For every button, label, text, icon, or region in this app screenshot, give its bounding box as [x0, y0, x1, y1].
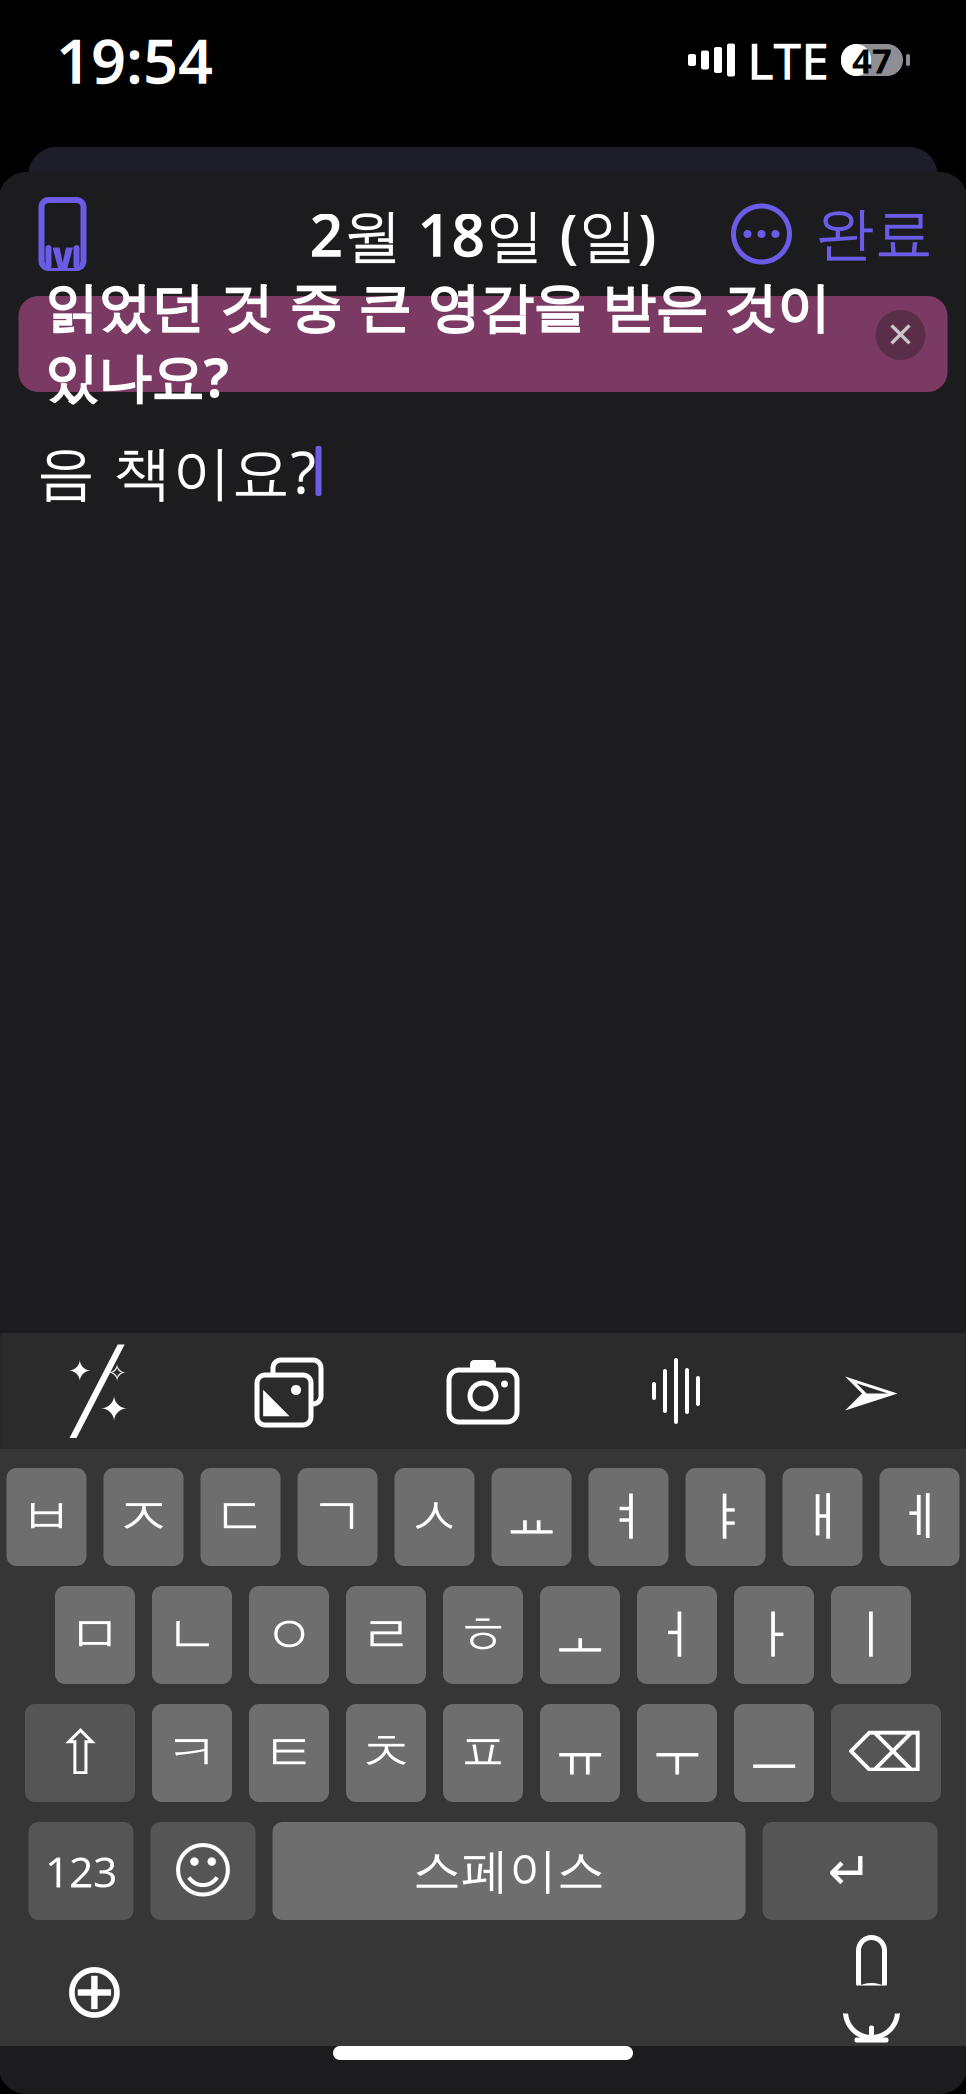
staticText: ㄹ [359, 1602, 412, 1668]
button[interactable]: Bookmark [20, 184, 104, 284]
button[interactable]: ㅕ [588, 1468, 668, 1566]
staticText: ㅡ [747, 1720, 800, 1786]
staticText: ㅔ [893, 1484, 946, 1550]
button[interactable]: ㅐ [782, 1468, 862, 1566]
button[interactable]: ㅔ [879, 1468, 959, 1566]
staticText: ✧ [107, 1359, 127, 1387]
button[interactable]: More options [719, 190, 803, 278]
button[interactable]: ㅗ [540, 1586, 620, 1684]
button[interactable]: Photo library [193, 1333, 386, 1449]
button[interactable]: ⌫ [831, 1704, 941, 1802]
staticText: ㅅ [408, 1484, 461, 1550]
staticText: ➢ [836, 1347, 901, 1435]
button[interactable]: 123 [28, 1822, 133, 1920]
staticText: 읽었던 것 중 큰 영감을 받은 것이 있나요? [44, 276, 829, 412]
staticText: ㅊ [359, 1720, 412, 1786]
staticText: ㅎ [456, 1602, 509, 1668]
button[interactable]: ㅛ [491, 1468, 571, 1566]
staticText: ㅍ [456, 1720, 509, 1786]
staticText: 123 [45, 1843, 117, 1899]
staticText: ╱ [73, 1346, 121, 1436]
button[interactable]: Dismiss prompt [869, 304, 931, 366]
button[interactable]: Camera [386, 1333, 579, 1449]
button[interactable]: ㅊ [346, 1704, 426, 1802]
staticText: ㅁ [68, 1602, 121, 1668]
button[interactable]: ㄷ [200, 1468, 280, 1566]
button[interactable]: ㅍ [443, 1704, 523, 1802]
staticText: ☺ [171, 1836, 235, 1906]
button[interactable]: 완료 [803, 186, 945, 282]
button[interactable]: ㅌ [249, 1704, 329, 1802]
button[interactable]: ㅣ [831, 1586, 911, 1684]
button[interactable]: ㅅ [394, 1468, 474, 1566]
staticText: ㅗ [553, 1602, 606, 1668]
staticText: 2월 18일 (일) [309, 195, 656, 273]
button[interactable]: ㅑ [685, 1468, 765, 1566]
button[interactable]: Dictation [821, 1940, 921, 2040]
staticText: 47 [852, 37, 892, 83]
button[interactable]: ㄴ [152, 1586, 232, 1684]
staticText: ⇧ [54, 1718, 105, 1788]
button[interactable]: ㅋ [152, 1704, 232, 1802]
staticText: ↵ [827, 1841, 872, 1901]
staticText: ㅑ [699, 1484, 752, 1550]
button[interactable]: ㅡ [734, 1704, 814, 1802]
button[interactable]: ㅓ [637, 1586, 717, 1684]
button[interactable]: ㄹ [346, 1586, 426, 1684]
staticText: ㅕ [602, 1484, 655, 1550]
button[interactable]: Next keyboard [44, 1940, 144, 2040]
staticText: ◣ [263, 1380, 290, 1420]
staticText: ㅏ [747, 1602, 800, 1668]
staticText: ㄷ [214, 1484, 267, 1550]
staticText: ㅠ [553, 1720, 606, 1786]
staticText: ㅐ [796, 1484, 849, 1550]
staticText: ㅛ [505, 1484, 558, 1550]
button[interactable]: ☺ [150, 1822, 255, 1920]
button[interactable]: ㅇ [249, 1586, 329, 1684]
staticText: ✦ [67, 1354, 92, 1388]
staticText: ㅌ [262, 1720, 315, 1786]
staticText: ㅂ [20, 1484, 73, 1550]
staticText: ㅋ [165, 1720, 218, 1786]
button[interactable]: ㅈ [103, 1468, 183, 1566]
staticText: ㅣ [844, 1602, 897, 1668]
button[interactable]: ㅜ [637, 1704, 717, 1802]
button[interactable]: ㅏ [734, 1586, 814, 1684]
staticText: ⊕ [62, 1946, 127, 2034]
button[interactable]: ㅁ [55, 1586, 135, 1684]
staticText: LTE [747, 26, 829, 94]
button[interactable]: Writing tools [0, 1333, 193, 1449]
button[interactable]: Audio recording [579, 1333, 772, 1449]
staticText: ㅜ [650, 1720, 703, 1786]
button[interactable]: Location [772, 1333, 965, 1449]
button[interactable]: ㅠ [540, 1704, 620, 1802]
staticText: ㅇ [262, 1602, 315, 1668]
staticText: ㄱ [311, 1484, 364, 1550]
staticText: ∨ [46, 234, 78, 280]
button[interactable]: ㅂ [6, 1468, 86, 1566]
button[interactable]: 스페이스 [272, 1822, 745, 1920]
staticText: ㅓ [650, 1602, 703, 1668]
staticText: ⌫ [848, 1723, 923, 1783]
staticText: 스페이스 [413, 1841, 605, 1900]
staticText: ✦ [99, 1389, 128, 1429]
staticText: ㅈ [117, 1484, 170, 1550]
staticText: 음 책이요? [36, 432, 315, 510]
staticText: 19:54 [56, 19, 213, 101]
button[interactable]: ↵ [762, 1822, 937, 1920]
button[interactable]: ㄱ [297, 1468, 377, 1566]
staticText: ✕ [886, 315, 915, 355]
button[interactable]: ⇧ [25, 1704, 135, 1802]
staticText: ㄴ [165, 1602, 218, 1668]
staticText: 완료 [815, 198, 933, 270]
button[interactable]: ㅎ [443, 1586, 523, 1684]
